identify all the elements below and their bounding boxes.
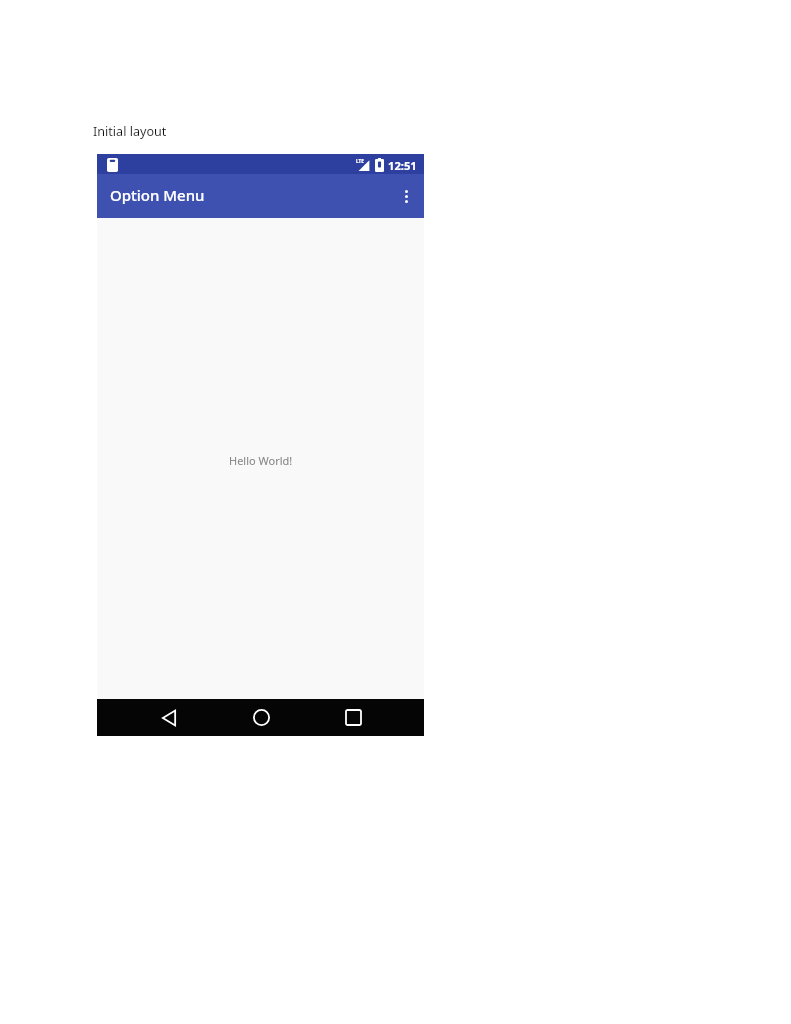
button[interactable]: Home bbox=[238, 699, 284, 736]
button[interactable]: More options bbox=[386, 176, 426, 216]
staticText: Hello World! bbox=[229, 453, 293, 468]
button[interactable]: Back bbox=[146, 699, 192, 736]
staticText: 12:51 bbox=[388, 158, 417, 173]
staticText: Initial layout bbox=[93, 123, 167, 140]
staticText: Option Menu bbox=[110, 185, 205, 205]
button[interactable]: Recents bbox=[330, 699, 376, 736]
staticText: LTE bbox=[356, 158, 364, 164]
